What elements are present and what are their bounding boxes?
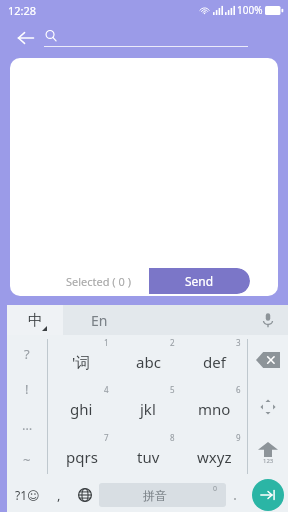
staticText: ghi <box>70 399 93 419</box>
staticText: 中 <box>28 311 43 330</box>
button[interactable]: 5 <box>115 382 181 430</box>
button[interactable]: 4 <box>48 382 115 430</box>
button[interactable]: Change keyboard <box>71 478 99 512</box>
staticText: 8 <box>170 432 175 443</box>
staticText: abc <box>136 352 161 372</box>
button[interactable]: Selected ( 0 ) <box>48 268 149 294</box>
button[interactable]: ? <box>7 337 47 370</box>
button[interactable]: 9 <box>181 430 247 478</box>
button[interactable]: 。 <box>226 478 248 512</box>
staticText: 。 <box>233 490 242 501</box>
staticText: 7 <box>104 432 109 443</box>
staticText: 6 <box>236 384 241 395</box>
button[interactable]: Move cursor <box>248 385 288 429</box>
staticText: jkl <box>140 399 156 419</box>
staticText: Selected ( 0 ) <box>66 274 131 289</box>
staticText: Send <box>185 273 214 289</box>
button[interactable]: … <box>7 408 47 441</box>
staticText: , <box>57 486 61 504</box>
staticText: pqrs <box>66 447 98 467</box>
button[interactable]: Send <box>149 268 250 294</box>
staticText: 100% <box>237 3 263 17</box>
button[interactable]: 8 <box>115 430 181 478</box>
button[interactable]: 2 <box>115 335 181 382</box>
button[interactable]: 7 <box>48 430 115 478</box>
staticText: '词 <box>72 352 91 372</box>
staticText: 12:28 <box>8 3 37 18</box>
staticText: 4 <box>104 384 109 395</box>
staticText: ! <box>25 380 29 398</box>
button[interactable]: 拼音 <box>99 483 226 507</box>
staticText: tuv <box>137 447 160 467</box>
button[interactable]: ~ <box>7 443 47 476</box>
button[interactable]: 1 <box>48 335 115 382</box>
button[interactable]: 6 <box>181 382 247 430</box>
staticText: En <box>91 311 108 330</box>
staticText: ?1☺ <box>15 487 40 503</box>
staticText: wxyz <box>197 447 232 467</box>
button[interactable]: Voice input <box>248 305 288 335</box>
staticText: def <box>203 352 226 372</box>
staticText: 3 <box>236 337 241 348</box>
button[interactable]: ! <box>7 372 47 405</box>
staticText: 1 <box>104 337 109 348</box>
staticText: 9 <box>236 432 241 443</box>
button[interactable]: Enter <box>248 478 288 512</box>
staticText: ~ <box>23 451 31 469</box>
staticText: 5 <box>170 384 175 395</box>
staticText: 2 <box>170 337 175 348</box>
button[interactable]: ?1☺ <box>7 478 47 512</box>
button[interactable]: 3 <box>181 335 247 382</box>
staticText: mno <box>198 399 231 419</box>
button[interactable] <box>44 23 248 53</box>
button[interactable]: Shift, 123 <box>248 431 288 475</box>
staticText: … <box>22 416 33 434</box>
staticText: ? <box>24 345 30 363</box>
staticText: 123 <box>263 457 274 465</box>
button[interactable]: 中 <box>7 305 63 335</box>
button[interactable]: Backspace <box>248 338 288 382</box>
staticText: 0 <box>213 484 218 494</box>
button[interactable]: , <box>47 478 71 512</box>
staticText: 拼音 <box>143 488 167 503</box>
button[interactable]: Back <box>10 22 42 54</box>
button[interactable]: En <box>63 305 248 335</box>
